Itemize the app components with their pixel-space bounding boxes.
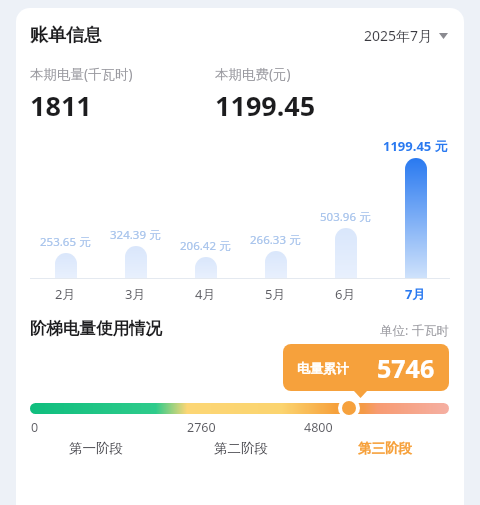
staticText: 第三阶段: [358, 440, 412, 457]
button[interactable]: 第一阶段: [16, 440, 176, 457]
button[interactable]: 1199.45 元: [380, 136, 450, 303]
staticText: 第二阶段: [214, 440, 268, 457]
staticText: 电量累计: [297, 360, 349, 376]
staticText: 324.39 元: [110, 227, 161, 243]
staticText: 253.65 元: [40, 234, 91, 250]
button[interactable]: 第二阶段: [176, 440, 306, 457]
staticText: 本期电量(千瓦时): [30, 65, 133, 83]
staticText: 266.33 元: [250, 232, 301, 248]
staticText: 7月: [405, 285, 426, 303]
staticText: 503.96 元: [320, 209, 371, 225]
button[interactable]: 206.42 元: [170, 136, 240, 303]
staticText: 5月: [265, 285, 286, 303]
button[interactable]: 324.39 元: [100, 136, 170, 303]
staticText: 4800: [304, 419, 333, 436]
button[interactable]: 第三阶段: [306, 440, 464, 457]
staticText: 本期电费(元): [215, 65, 291, 83]
staticText: 单位: 千瓦时: [380, 322, 450, 339]
staticText: 2760: [187, 419, 216, 436]
staticText: 1199.45: [215, 87, 316, 124]
staticText: 账单信息: [30, 24, 102, 47]
staticText: 1811: [30, 87, 92, 124]
staticText: 4月: [195, 285, 216, 303]
staticText: 6月: [335, 285, 356, 303]
staticText: 2月: [55, 285, 76, 303]
button[interactable]: 266.33 元: [240, 136, 310, 303]
staticText: 3月: [125, 285, 146, 303]
staticText: 第一阶段: [69, 440, 123, 457]
button[interactable]: 253.65 元: [30, 136, 100, 303]
button[interactable]: 2025年7月: [362, 24, 450, 47]
staticText: 2025年7月: [364, 26, 433, 45]
button[interactable]: 电量累计: [283, 344, 449, 391]
staticText: 5746: [377, 351, 435, 385]
button[interactable]: 503.96 元: [310, 136, 380, 303]
staticText: 0: [31, 419, 39, 436]
staticText: 1199.45 元: [383, 137, 448, 155]
staticText: 206.42 元: [180, 238, 231, 254]
staticText: 阶梯电量使用情况: [30, 318, 162, 339]
